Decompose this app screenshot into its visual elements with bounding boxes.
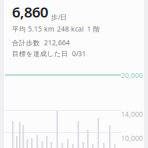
staticText: 平均 5.15 km — [12, 24, 54, 33]
staticText: 1 階 — [87, 24, 100, 33]
staticText: 歩/日 — [51, 13, 67, 21]
staticText: 合計歩数 212,664 — [12, 38, 70, 47]
staticText: 6,860 — [12, 2, 48, 21]
staticText: 14,000 — [121, 110, 143, 119]
staticText: 20,000 — [121, 71, 143, 80]
staticText: 10,000 — [121, 134, 143, 143]
staticText: 目標を達成した日 0/31 — [12, 49, 86, 58]
staticText: 248 kcal — [57, 24, 84, 33]
